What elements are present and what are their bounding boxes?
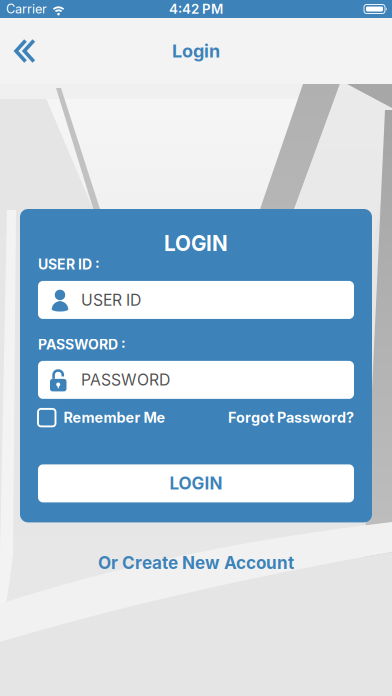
staticText: Carrier (6, 1, 47, 17)
button[interactable]: LOGIN (38, 464, 354, 502)
staticText: Forgot Password? (228, 409, 354, 426)
staticText: PASSWORD : (38, 336, 126, 353)
staticText: 4:42 PM (169, 1, 223, 17)
button[interactable]: Forgot Password? (228, 409, 354, 426)
staticText: LOGIN (169, 473, 222, 494)
button[interactable]: Or Create New Account (98, 552, 294, 573)
staticText: USER ID (81, 290, 141, 309)
staticText: Or Create New Account (98, 552, 294, 573)
staticText: LOGIN (164, 231, 228, 256)
staticText: Remember Me (63, 409, 165, 426)
staticText: USER ID : (38, 256, 100, 273)
staticText: PASSWORD (81, 370, 170, 389)
button[interactable]: Remember Me (38, 409, 165, 426)
button[interactable]: Back (0, 30, 37, 72)
staticText: Login (172, 40, 220, 62)
